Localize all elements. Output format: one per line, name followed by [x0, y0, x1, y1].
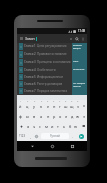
staticText: , [30, 134, 31, 139]
staticText: с [39, 124, 41, 129]
staticText: э [83, 114, 85, 119]
staticText: Статья 3 [24, 60, 36, 64]
button[interactable]: а [38, 111, 45, 121]
staticText: возврат [73, 44, 82, 47]
staticText: Цели регулирования [37, 44, 67, 48]
button[interactable]: в [31, 111, 38, 121]
staticText: ж [76, 114, 80, 119]
staticText: Особенности применения [37, 68, 72, 72]
button[interactable]: м [43, 121, 49, 131]
staticText: г [59, 104, 61, 109]
staticText: п [47, 114, 50, 119]
staticText: 3 [34, 100, 36, 103]
staticText: Статья 7 [24, 89, 36, 93]
button[interactable]: 5 [45, 100, 51, 111]
staticText: з [77, 104, 79, 109]
staticText: ь [63, 124, 66, 129]
staticText: Статья 6 [24, 82, 36, 86]
staticText: 8 [65, 100, 67, 103]
button[interactable]: Статья 7 [17, 88, 87, 95]
button[interactable]: Space [41, 133, 69, 139]
button[interactable]: х [81, 100, 87, 111]
button[interactable]: Search [74, 34, 80, 43]
staticText: а [40, 114, 43, 119]
button[interactable]: Select all [68, 34, 74, 43]
staticText: щ [70, 104, 74, 109]
staticText: 2 [27, 100, 29, 103]
button[interactable]: Send [79, 134, 84, 139]
staticText: Реестр договоров [37, 82, 63, 86]
button[interactable]: , [28, 132, 33, 140]
staticText: 0 [77, 100, 79, 103]
staticText: вещей [73, 47, 81, 50]
button[interactable]: ь [61, 121, 67, 131]
button[interactable]: Back [27, 141, 37, 151]
button[interactable]: 2 [24, 100, 31, 111]
button[interactable]: ы [24, 111, 31, 121]
staticText: м [45, 124, 48, 129]
button[interactable]: Recents [67, 141, 77, 151]
button[interactable]: Symbols [17, 132, 28, 140]
staticText: Принципы и основания [37, 60, 71, 64]
button[interactable]: 3 [31, 100, 38, 111]
button[interactable]: о [57, 111, 63, 121]
button[interactable]: Navigate up [17, 34, 25, 43]
button[interactable]: 0 [75, 100, 81, 111]
staticText: . [72, 134, 73, 139]
button[interactable]: ж [75, 111, 81, 121]
button[interactable]: Статья 4 [17, 67, 87, 74]
button[interactable]: Home [47, 141, 57, 151]
button[interactable]: п [45, 111, 51, 121]
button[interactable]: Статья 2 [17, 51, 87, 59]
button[interactable]: э [81, 111, 87, 121]
button[interactable]: ч [31, 121, 37, 131]
staticText: в [33, 114, 36, 119]
staticText: ш [64, 104, 68, 109]
staticText: о [59, 114, 62, 119]
staticText: 9 [71, 100, 73, 103]
button[interactable]: 1 [17, 100, 24, 111]
button[interactable]: Статья 1 [17, 43, 87, 51]
staticText: 6 [53, 100, 55, 103]
staticText: х [83, 103, 86, 108]
button[interactable]: 7 [57, 100, 63, 111]
staticText: Закон [25, 36, 35, 41]
button[interactable]: Статья 6 [17, 81, 87, 88]
button[interactable]: Backspace [79, 121, 87, 131]
staticText: р [53, 114, 56, 119]
staticText: 5 [47, 100, 49, 103]
button[interactable]: я [25, 121, 31, 131]
staticText: Статья 2 [24, 52, 36, 56]
button[interactable]: с [37, 121, 43, 131]
button[interactable]: 4 [38, 100, 45, 111]
button[interactable]: р [51, 111, 57, 121]
button[interactable]: 6 [51, 100, 57, 111]
button[interactable]: More options [80, 34, 86, 43]
staticText: ?123 [19, 134, 26, 138]
staticText: остановка [73, 68, 85, 71]
staticText: Русский [50, 134, 60, 138]
button[interactable]: ф [17, 111, 24, 121]
staticText: ф [19, 114, 22, 119]
button[interactable]: ю [73, 121, 79, 131]
button[interactable]: . [70, 132, 75, 140]
button[interactable]: Статья 3 [17, 59, 87, 67]
staticText: й [19, 104, 22, 109]
button[interactable]: 9 [69, 100, 75, 111]
staticText: я [27, 124, 30, 129]
button[interactable]: 8 [63, 100, 69, 111]
staticText: Правовое основание [37, 52, 67, 56]
staticText: Статья 5 [24, 75, 36, 79]
button[interactable]: и [49, 121, 55, 131]
button[interactable]: Shift [17, 121, 25, 131]
staticText: ы [26, 114, 29, 119]
staticText: Информационные системы [37, 75, 72, 79]
button[interactable]: л [63, 111, 69, 121]
button[interactable]: т [55, 121, 61, 131]
button[interactable]: д [69, 111, 75, 121]
staticText: ю [74, 124, 78, 129]
button[interactable]: Статья 5 [17, 74, 87, 81]
button[interactable]: б [67, 121, 73, 131]
button[interactable]: Emoji [33, 132, 40, 140]
staticText: Статья 4 [24, 68, 36, 72]
